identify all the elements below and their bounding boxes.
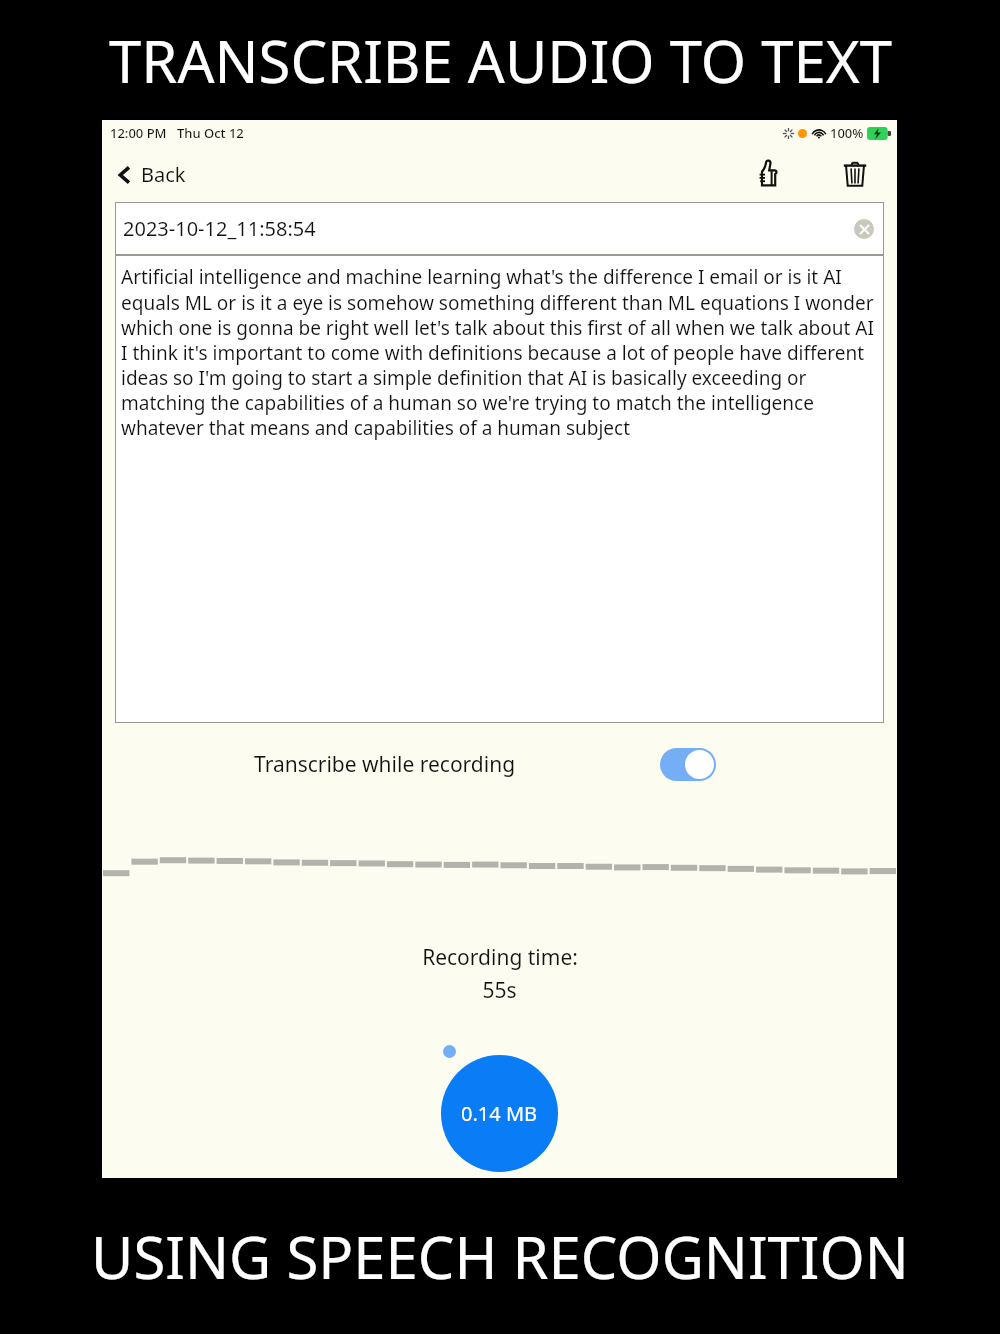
button[interactable]: Transcribe while recording	[102, 723, 897, 805]
staticText: Back	[141, 161, 186, 188]
button[interactable]: Artificial intelligence and machine lear…	[115, 255, 884, 723]
staticText: TRANSCRIBE AUDIO TO TEXT	[109, 21, 892, 100]
button[interactable]: 2023-10-12_11:58:54	[115, 202, 884, 255]
staticText: 0.14 MB	[461, 1100, 538, 1127]
staticText: 12:00 PM	[110, 124, 167, 142]
button[interactable]: Clear text	[854, 219, 874, 239]
button[interactable]: Back	[110, 155, 192, 194]
staticText: 55s	[482, 976, 517, 1005]
staticText: Recording time:	[422, 943, 578, 972]
staticText: Transcribe while recording	[254, 750, 516, 779]
button[interactable]: Like	[747, 153, 789, 195]
staticText: Thu Oct 12	[177, 124, 244, 142]
staticText: 2023-10-12_11:58:54	[123, 215, 316, 242]
staticText: Artificial intelligence and machine lear…	[121, 264, 880, 440]
staticText: 100%	[830, 124, 864, 142]
button[interactable]: 0.14 MB	[441, 1055, 558, 1172]
staticText: USING SPEECH RECOGNITION	[91, 1217, 909, 1296]
button[interactable]: Delete	[835, 154, 875, 194]
